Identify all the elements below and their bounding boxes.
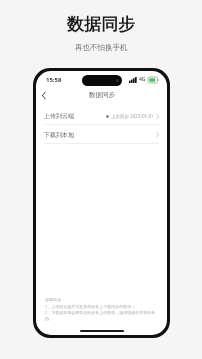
staticText: 1、上传到云端后可在其他设备上下载同步的数据； [45,304,136,309]
staticText: 数据同步 [89,91,115,99]
staticText: 15:58 [46,76,62,84]
staticText: 下载到本地 [44,131,74,139]
button[interactable]: 下载到本地 [36,125,167,144]
staticText: 上传到云端 [44,112,74,120]
button[interactable]: 返回 [36,88,52,102]
staticText: 数据同步 [67,14,135,35]
staticText: 上次同步 2023-01-01 [111,113,154,119]
staticText: 4G [139,76,146,83]
staticText: 温馨提示 [45,297,61,302]
button[interactable]: 上传到云端 [36,106,167,125]
staticText: 2、下载到本地会覆盖当前设备上的数据，请谨慎操作并提前备份。 [45,310,158,321]
staticText: 再也不怕换手机 [75,43,128,52]
